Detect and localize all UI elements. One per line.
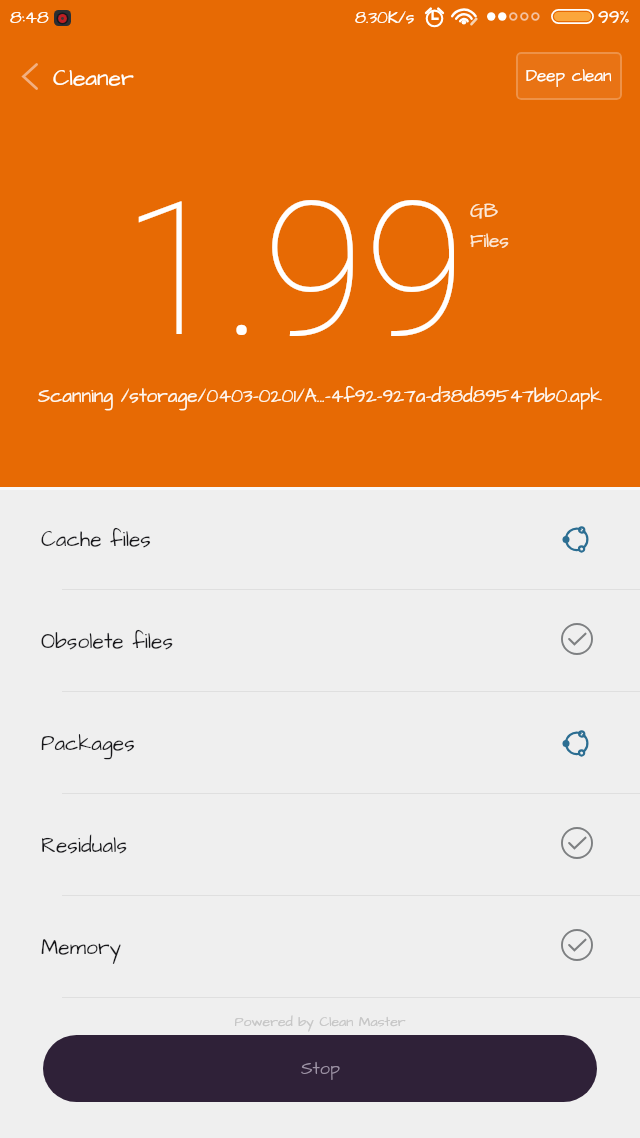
button[interactable]: Packages: [0, 691, 640, 793]
staticText: Files: [470, 228, 509, 254]
button[interactable]: Residuals: [0, 793, 640, 895]
staticText: Obsolete files: [41, 627, 173, 656]
staticText: Scanning /storage/0403-0201/A...-4f92-92…: [0, 383, 640, 409]
button[interactable]: Memory: [0, 895, 640, 997]
button[interactable]: Obsolete files: [0, 589, 640, 691]
staticText: 1.99: [122, 162, 466, 379]
button[interactable]: Back: [2, 34, 54, 110]
button[interactable]: Cache files: [0, 487, 640, 589]
staticText: Cleaner: [53, 62, 134, 94]
staticText: Cache files: [41, 525, 151, 554]
staticText: 8.30K/s: [355, 6, 415, 30]
staticText: Packages: [41, 729, 135, 758]
staticText: GB: [470, 197, 499, 225]
staticText: Powered by Clean Master: [0, 1012, 640, 1031]
staticText: Deep clean: [526, 64, 612, 88]
button[interactable]: Stop: [43, 1035, 597, 1102]
staticText: Stop: [301, 1056, 340, 1081]
staticText: Residuals: [41, 831, 128, 860]
button[interactable]: Deep clean: [516, 52, 622, 100]
staticText: Memory: [41, 933, 122, 962]
staticText: 8:48: [10, 5, 49, 30]
staticText: 99%: [598, 4, 630, 30]
